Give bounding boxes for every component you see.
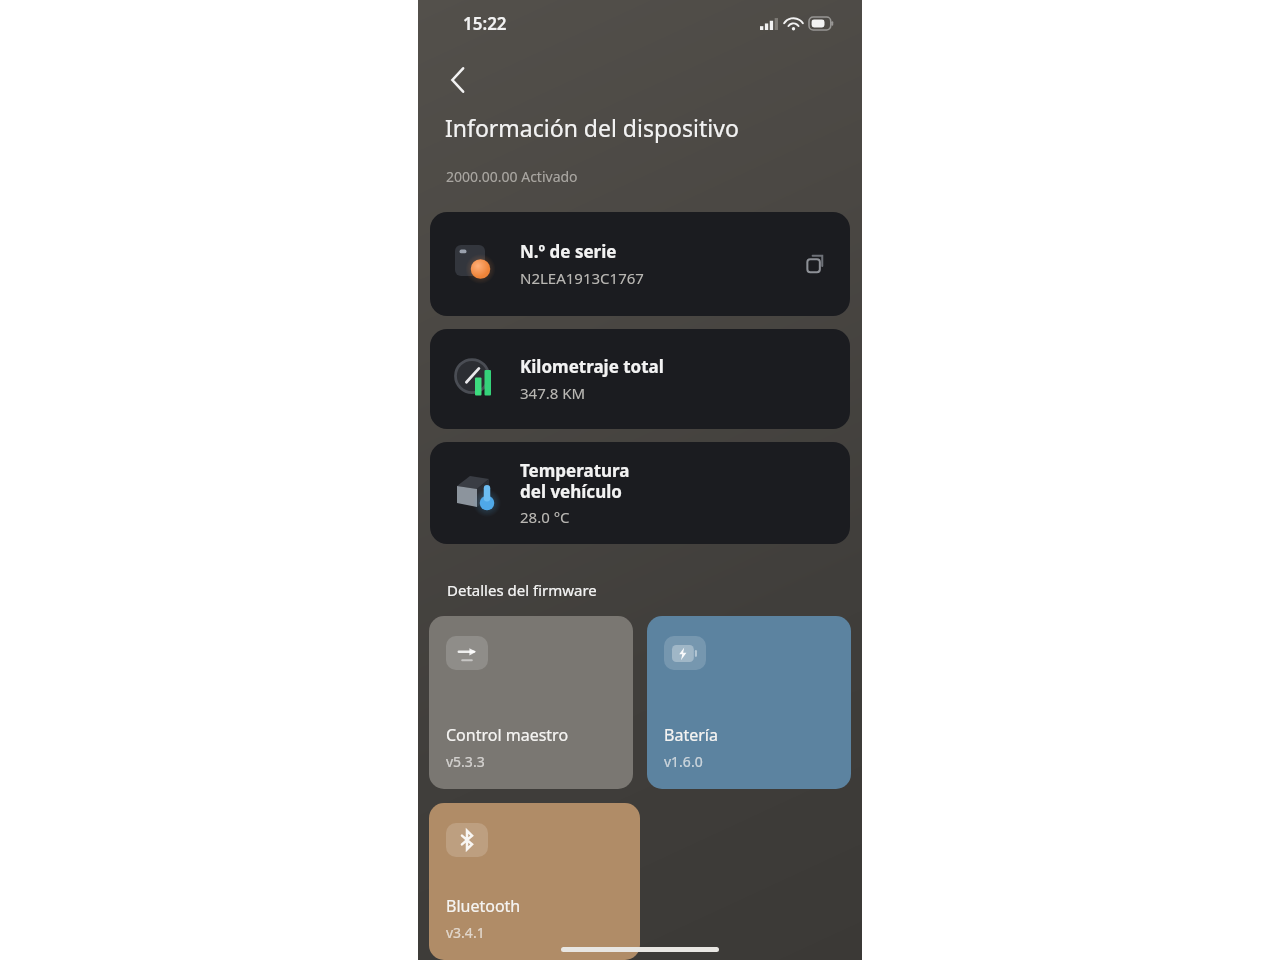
button[interactable]: Kilometraje total: [430, 329, 850, 429]
button[interactable]: Temperatura del vehículo: [430, 442, 850, 544]
staticText: v5.3.3: [446, 752, 485, 771]
button[interactable]: N.º de serie: [430, 212, 850, 316]
staticText: Información del dispositivo: [445, 112, 739, 143]
button[interactable]: Copy serial number: [796, 244, 836, 284]
staticText: Kilometraje total: [520, 355, 664, 378]
staticText: Batería: [664, 724, 718, 746]
staticText: Control maestro: [446, 724, 569, 746]
staticText: Temperatura del vehículo: [520, 459, 630, 503]
staticText: v1.6.0: [664, 752, 703, 771]
staticText: N2LEA1913C1767: [520, 268, 644, 288]
staticText: Detalles del firmware: [447, 580, 597, 600]
staticText: 28.0 °C: [520, 507, 570, 527]
staticText: 2000.00.00 Activado: [446, 167, 578, 186]
staticText: 347.8 KM: [520, 383, 586, 403]
staticText: v3.4.1: [446, 923, 485, 942]
staticText: N.º de serie: [520, 240, 617, 263]
button[interactable]: Batería: [647, 616, 851, 789]
staticText: Bluetooth: [446, 895, 521, 917]
button[interactable]: Bluetooth: [429, 803, 640, 960]
button[interactable]: Back: [436, 58, 480, 102]
button[interactable]: Control maestro: [429, 616, 633, 789]
staticText: 15:22: [463, 12, 507, 35]
